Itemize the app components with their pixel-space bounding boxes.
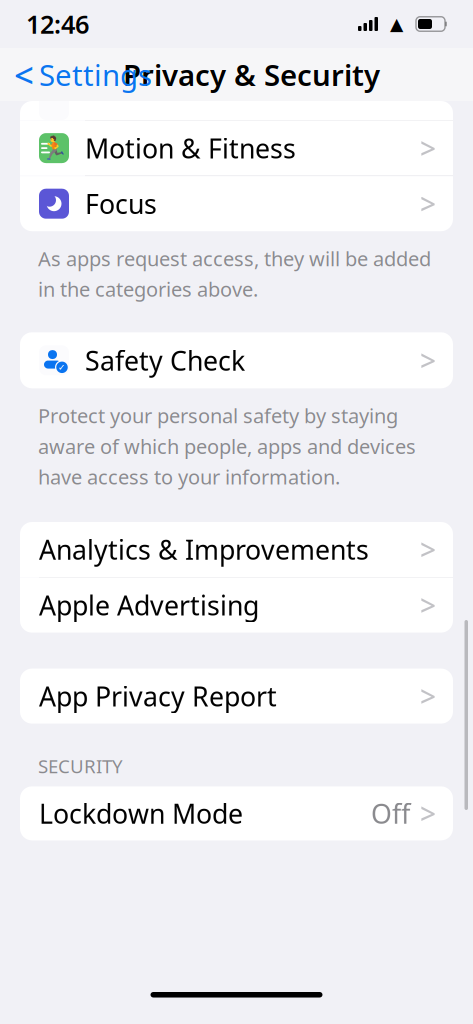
staticText: > xyxy=(420,586,436,624)
button[interactable]: 🏃 xyxy=(20,121,453,176)
staticText: Focus xyxy=(85,186,157,221)
staticText: 12:46 xyxy=(26,7,89,41)
button[interactable]: Lockdown Mode xyxy=(20,786,453,840)
staticText: > xyxy=(420,129,436,167)
button[interactable]: Analytics & Improvements xyxy=(20,522,453,577)
staticText: Apple Advertising xyxy=(39,587,259,623)
staticText: Settings xyxy=(39,55,152,94)
staticText: Analytics & Improvements xyxy=(39,532,369,567)
staticText: SECURITY xyxy=(38,754,123,778)
staticText: ✓ xyxy=(58,362,66,373)
staticText: Privacy & Security xyxy=(123,55,380,94)
staticText: < xyxy=(14,51,34,97)
staticText: App Privacy Report xyxy=(39,678,277,714)
button[interactable]: Apple Advertising xyxy=(20,578,453,633)
button[interactable]: Focus xyxy=(20,176,453,231)
staticText: As apps request access, they will be add… xyxy=(38,245,431,302)
staticText: Protect your personal safety by staying … xyxy=(38,402,416,490)
staticText: > xyxy=(420,185,436,222)
staticText: ▲ xyxy=(390,14,403,34)
staticText: 🏃 xyxy=(39,135,67,161)
staticText: Safety Check xyxy=(85,343,245,378)
button[interactable]: ✓ xyxy=(20,332,453,388)
staticText: > xyxy=(420,677,436,715)
button[interactable]: < xyxy=(0,45,152,103)
button[interactable]: App Privacy Report xyxy=(20,669,453,724)
staticText: > xyxy=(420,795,436,832)
staticText: Lockdown Mode xyxy=(39,796,243,831)
staticText: > xyxy=(420,531,436,568)
staticText: Motion & Fitness xyxy=(85,130,296,166)
staticText: Off xyxy=(371,796,410,831)
staticText: > xyxy=(420,342,436,379)
